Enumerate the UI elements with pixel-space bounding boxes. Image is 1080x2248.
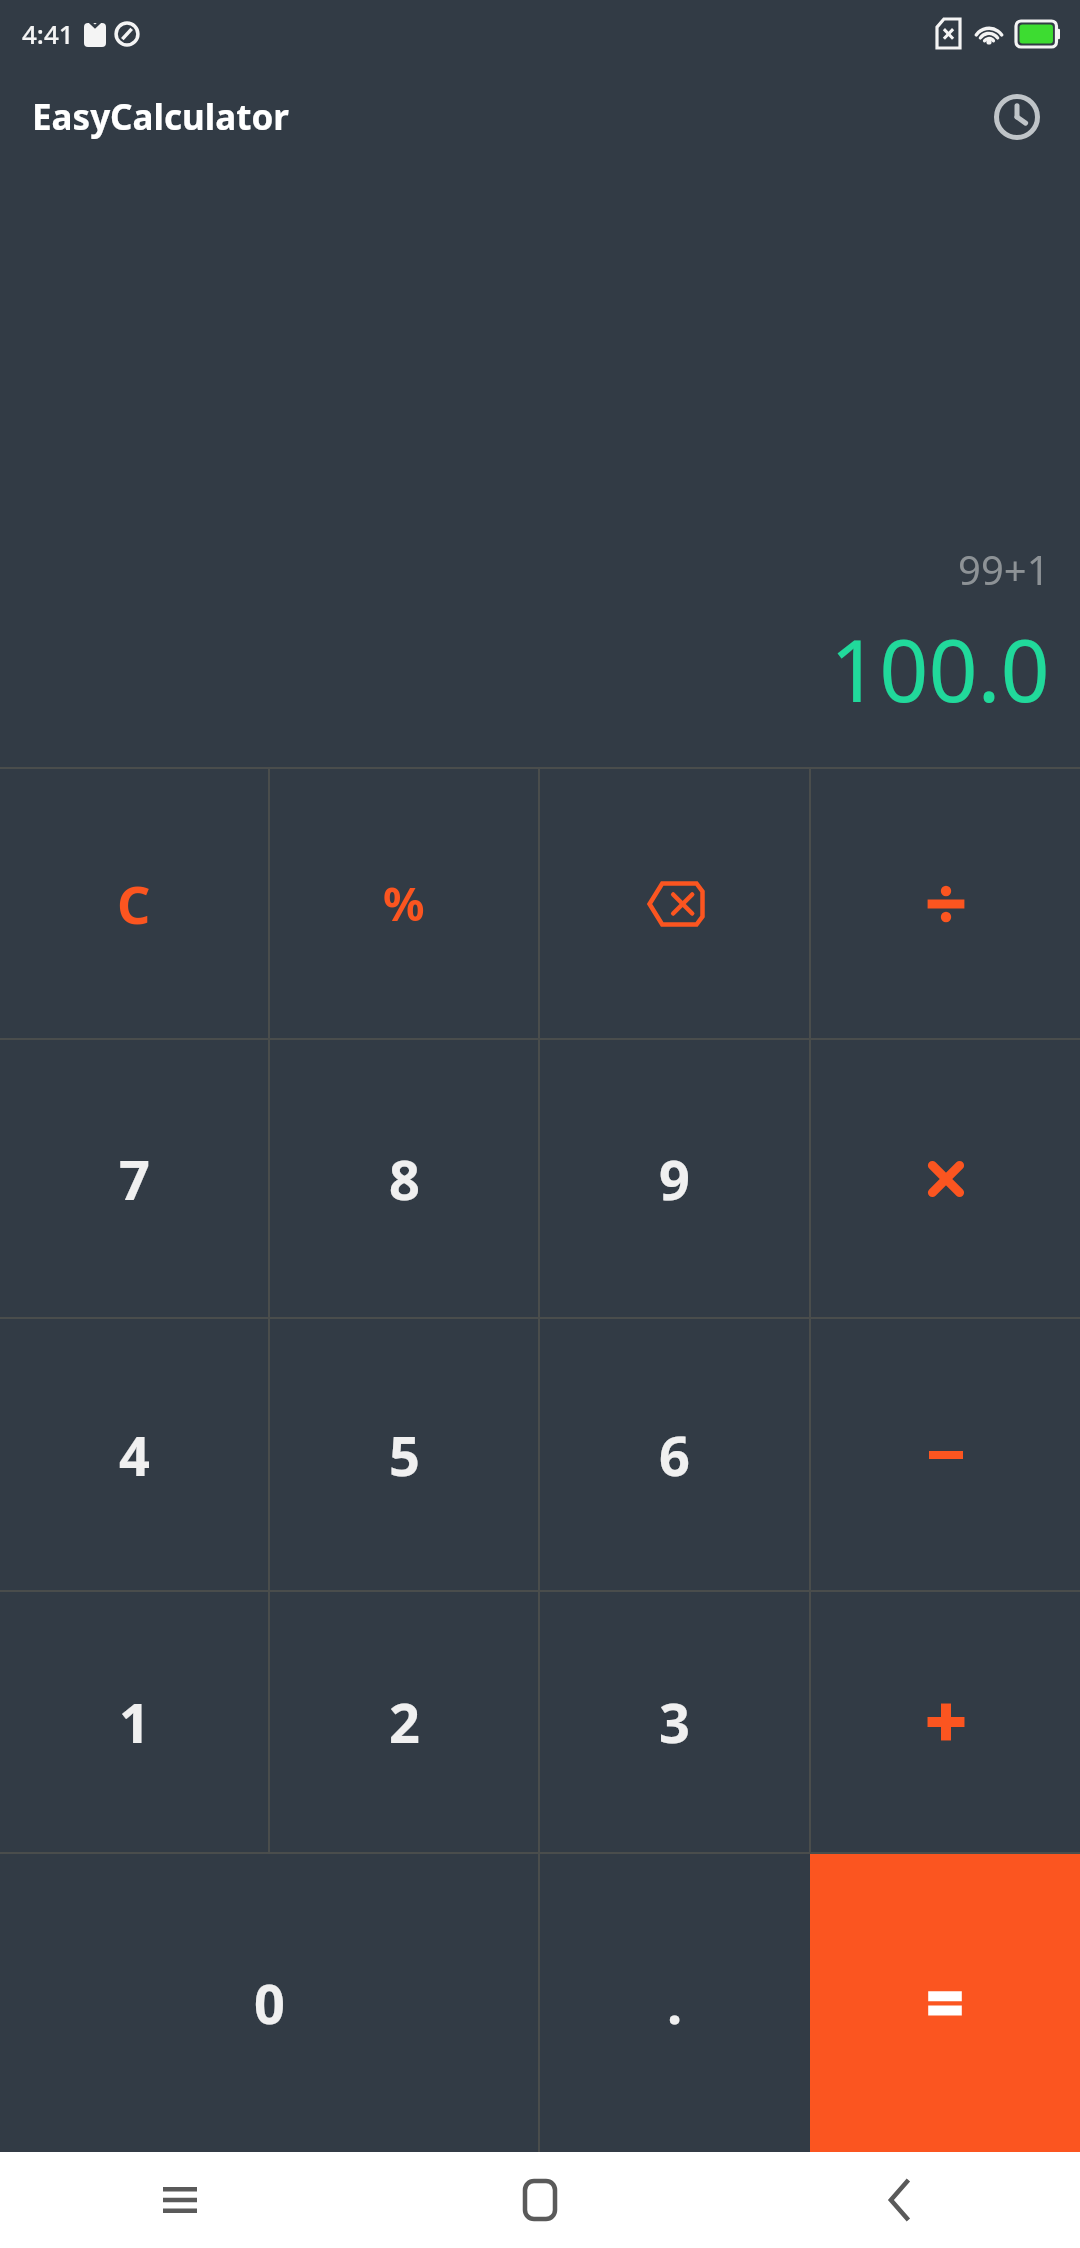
staticText: 3: [659, 1685, 690, 1759]
staticText: %: [383, 872, 425, 935]
staticText: 1: [119, 1685, 150, 1759]
button[interactable]: [811, 1592, 1080, 1852]
staticText: 4: [119, 1418, 150, 1492]
button[interactable]: Equals: [810, 1854, 1080, 2152]
button[interactable]: 8: [270, 1040, 538, 1317]
staticText: 6: [659, 1418, 690, 1492]
button[interactable]: 6: [540, 1319, 809, 1590]
button[interactable]: 2: [270, 1592, 538, 1852]
staticText: 8: [389, 1142, 420, 1216]
button[interactable]: History: [978, 78, 1056, 156]
staticText: C: [117, 868, 151, 939]
button[interactable]: [811, 769, 1080, 1038]
staticText: 99+1: [958, 542, 1050, 596]
staticText: 9: [659, 1142, 690, 1216]
button[interactable]: Home: [360, 2152, 720, 2248]
button[interactable]: 3: [540, 1592, 809, 1852]
button[interactable]: 5: [270, 1319, 538, 1590]
button[interactable]: [811, 1319, 1080, 1590]
button[interactable]: 7: [0, 1040, 268, 1317]
button[interactable]: 9: [540, 1040, 809, 1317]
staticText: 2: [389, 1685, 420, 1759]
button[interactable]: Backspace: [540, 769, 809, 1038]
button[interactable]: [811, 1040, 1080, 1317]
staticText: EasyCalculator: [32, 93, 289, 141]
staticText: 100.0: [830, 610, 1050, 727]
button[interactable]: 4: [0, 1319, 268, 1590]
staticText: .: [667, 1966, 683, 2040]
staticText: 7: [119, 1142, 150, 1216]
button[interactable]: Back: [720, 2152, 1080, 2248]
button[interactable]: Recents: [0, 2152, 360, 2248]
staticText: 0: [254, 1966, 285, 2040]
button[interactable]: .: [540, 1854, 810, 2152]
button[interactable]: 0: [0, 1854, 538, 2152]
button[interactable]: %: [270, 769, 538, 1038]
button[interactable]: 1: [0, 1592, 268, 1852]
staticText: 5: [389, 1418, 420, 1492]
button[interactable]: C: [0, 769, 268, 1038]
staticText: 4:41: [22, 16, 74, 51]
